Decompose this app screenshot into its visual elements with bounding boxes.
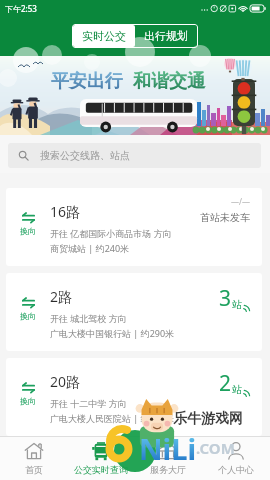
button[interactable]: 个人中心 — [202, 437, 270, 480]
staticText: 开往 城北驾校 方向 — [50, 312, 127, 324]
staticText: 乐牛游戏网 — [173, 410, 243, 428]
button[interactable]: 换向 — [6, 188, 262, 266]
staticText: 换向 — [20, 226, 36, 236]
button[interactable]: 换向 — [6, 273, 262, 351]
staticText: 2路 — [50, 287, 73, 306]
staticText: 广电大楼人民医院站 | 约100米 — [50, 412, 175, 424]
staticText: 3 — [219, 284, 232, 313]
staticText: 服务大厅 — [150, 464, 186, 475]
button[interactable]: 公交实时查询 — [67, 437, 134, 480]
staticText: 换向 — [20, 396, 36, 406]
button[interactable]: 出行规划 — [135, 25, 197, 47]
staticText: 开往 亿都国际小商品市场 方向 — [50, 227, 172, 239]
staticText: 20路 — [50, 372, 81, 391]
staticText: 广电大楼中国银行站 | 约290米 — [50, 327, 175, 339]
staticText: 下午2:53 — [5, 3, 37, 14]
staticText: 2 — [219, 369, 232, 398]
staticText: 平安出行 — [51, 70, 123, 93]
staticText: —/— — [231, 196, 250, 207]
button[interactable]: 服务大厅 — [134, 437, 202, 480]
staticText: .COM — [196, 438, 235, 458]
staticText: 首页 — [25, 464, 43, 475]
staticText: 商贸城站 | 约240米 — [50, 242, 130, 254]
staticText: 搜索公交线路、站点 — [40, 149, 130, 162]
staticText: 个人中心 — [218, 464, 254, 475]
staticText: 站 — [232, 298, 242, 311]
button[interactable]: 换向 — [6, 358, 262, 436]
button[interactable]: 首页 — [0, 437, 67, 480]
staticText: 站 — [232, 383, 242, 396]
staticText: 出行规划 — [144, 29, 188, 43]
staticText: 和谐交通 — [133, 70, 205, 93]
staticText: 开往 十二中学 方向 — [50, 397, 127, 409]
button[interactable]: 搜索公交线路、站点 — [8, 143, 261, 168]
staticText: 实时公交 — [82, 29, 126, 43]
staticText: NiLi — [139, 429, 197, 468]
staticText: 16路 — [50, 202, 81, 221]
staticText: 公交实时查询 — [74, 464, 128, 475]
staticText: 首站未发车 — [200, 211, 250, 224]
button[interactable]: 实时公交 — [73, 25, 135, 47]
staticText: 换向 — [20, 311, 36, 321]
